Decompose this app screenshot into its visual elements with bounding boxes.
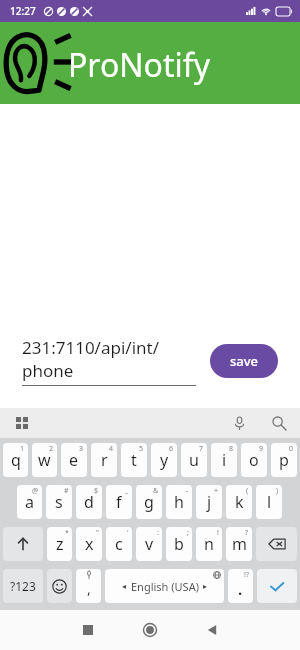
button[interactable]: o <box>241 443 267 477</box>
staticText: 5 <box>139 444 144 454</box>
staticText: f <box>116 491 122 513</box>
button[interactable]: Search <box>268 412 290 434</box>
button[interactable]: x <box>76 527 102 561</box>
staticText: : <box>157 528 159 538</box>
staticText: & <box>153 486 159 496</box>
staticText: b <box>174 533 184 555</box>
button[interactable]: 231:7110/api/int/phone <box>22 336 196 386</box>
button[interactable]: save <box>210 344 278 378</box>
staticText: v <box>145 533 154 555</box>
staticText: 231:7110/api/int/phone <box>22 336 196 382</box>
button[interactable]: Recents <box>66 610 110 650</box>
staticText: o <box>249 449 259 471</box>
staticText: !? <box>244 570 249 580</box>
staticText: y <box>160 449 169 471</box>
staticText: ( <box>246 486 249 496</box>
staticText: + <box>214 486 219 496</box>
button[interactable]: d <box>76 485 102 519</box>
staticText: i <box>222 449 227 471</box>
staticText: " <box>96 528 99 538</box>
button[interactable]: q <box>3 443 28 477</box>
staticText: ▸ <box>203 582 208 591</box>
button[interactable]: h <box>166 485 192 519</box>
staticText: English (USA) <box>131 579 199 594</box>
staticText: ? <box>245 528 249 538</box>
staticText: , <box>87 579 91 598</box>
button[interactable]: Voice input <box>228 412 250 434</box>
staticText: e <box>69 449 79 471</box>
button[interactable]: v <box>136 527 162 561</box>
button[interactable]: , <box>76 569 101 603</box>
staticText: c <box>115 533 123 555</box>
button[interactable]: . <box>228 569 253 603</box>
staticText: 4 <box>109 444 114 454</box>
staticText: 3 <box>79 444 84 454</box>
staticText: k <box>235 491 244 513</box>
staticText: g <box>144 491 154 513</box>
staticText: ' <box>127 528 129 538</box>
button[interactable]: y <box>151 443 177 477</box>
button[interactable]: Home <box>128 610 172 650</box>
staticText: t <box>131 449 137 471</box>
button[interactable]: Backspace <box>256 527 297 561</box>
button[interactable]: m <box>226 527 252 561</box>
staticText: 9 <box>259 444 264 454</box>
button[interactable]: i <box>211 443 237 477</box>
button[interactable]: Keyboard menu <box>10 411 34 435</box>
staticText: n <box>204 533 214 555</box>
staticText: ProNotify <box>68 43 211 87</box>
staticText: 2 <box>49 444 54 454</box>
button[interactable]: Back <box>190 610 234 650</box>
staticText: ◂ <box>122 582 127 591</box>
staticText: $ <box>94 486 99 496</box>
button[interactable]: p <box>271 443 297 477</box>
staticText: m <box>232 533 247 555</box>
staticText: 8 <box>229 444 234 454</box>
staticText: d <box>84 491 94 513</box>
staticText: ; <box>187 528 189 538</box>
button[interactable]: c <box>106 527 132 561</box>
staticText: ) <box>276 486 279 496</box>
button[interactable]: ?123 <box>3 569 43 603</box>
staticText: p <box>279 449 289 471</box>
button[interactable]: a <box>17 485 42 519</box>
staticText: a <box>25 491 34 513</box>
button[interactable]: z <box>47 527 72 561</box>
staticText: x <box>85 533 94 555</box>
staticText: j <box>207 491 212 513</box>
button[interactable]: Emoji <box>47 569 72 603</box>
button[interactable]: Shift <box>3 527 43 561</box>
button[interactable]: Enter <box>257 569 297 603</box>
button[interactable]: l <box>256 485 282 519</box>
staticText: 1 <box>20 444 25 454</box>
staticText: # <box>64 486 69 496</box>
button[interactable]: j <box>196 485 222 519</box>
button[interactable]: w <box>32 443 57 477</box>
button[interactable]: b <box>166 527 192 561</box>
button[interactable]: s <box>46 485 72 519</box>
staticText: h <box>174 491 184 513</box>
button[interactable]: k <box>226 485 252 519</box>
button[interactable]: ◂ <box>105 569 224 603</box>
button[interactable]: n <box>196 527 222 561</box>
staticText: q <box>11 449 21 471</box>
button[interactable]: g <box>136 485 162 519</box>
staticText: u <box>189 449 199 471</box>
button[interactable]: r <box>91 443 117 477</box>
staticText: save <box>230 352 259 370</box>
button[interactable]: e <box>61 443 87 477</box>
button[interactable]: f <box>106 485 132 519</box>
staticText: - <box>186 486 189 496</box>
staticText: _ <box>125 486 129 496</box>
staticText: * <box>65 528 69 538</box>
button[interactable]: t <box>121 443 147 477</box>
button[interactable]: u <box>181 443 207 477</box>
staticText: z <box>56 533 64 555</box>
staticText: 6 <box>169 444 174 454</box>
staticText: 12:27 <box>10 4 36 18</box>
staticText: 0 <box>289 444 294 454</box>
staticText: l <box>267 491 272 513</box>
staticText: s <box>55 491 63 513</box>
staticText: ?123 <box>10 578 36 594</box>
staticText: w <box>38 449 51 471</box>
